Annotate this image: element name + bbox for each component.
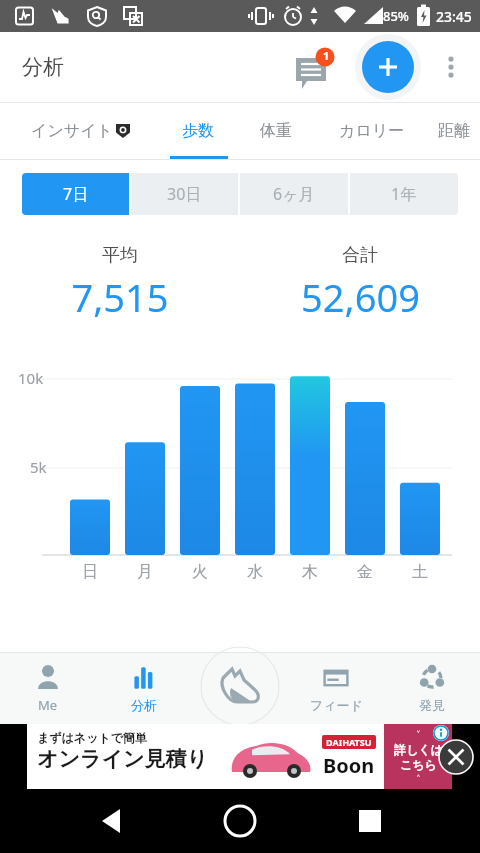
button[interactable]: Back bbox=[90, 799, 134, 843]
button[interactable]: Start workout bbox=[192, 652, 288, 724]
staticText: 木 bbox=[302, 562, 318, 582]
staticText: 分析 bbox=[22, 54, 64, 80]
button[interactable]: カロリー bbox=[316, 103, 428, 159]
button[interactable]: 1年 bbox=[350, 173, 458, 215]
staticText: 1年 bbox=[391, 183, 417, 205]
staticText: 30日 bbox=[167, 183, 202, 205]
staticText: ˄ bbox=[417, 772, 420, 786]
button[interactable]: Me bbox=[0, 652, 96, 724]
button[interactable]: Messages, 1 unread bbox=[288, 44, 334, 90]
button[interactable]: 30日 bbox=[131, 173, 238, 215]
staticText: 10k bbox=[18, 368, 44, 388]
button[interactable]: フィード bbox=[288, 652, 384, 724]
button[interactable]: ˅ bbox=[384, 724, 452, 789]
staticText: 7日 bbox=[63, 183, 89, 205]
button[interactable]: Close ad bbox=[438, 739, 474, 775]
button[interactable]: Home bbox=[218, 799, 262, 843]
button[interactable]: 平均 bbox=[0, 228, 240, 348]
staticText: こちら bbox=[400, 757, 437, 772]
button[interactable]: 発見 bbox=[384, 652, 480, 724]
staticText: 火 bbox=[192, 562, 208, 582]
staticText: Me bbox=[38, 696, 58, 714]
staticText: DAIHATSU bbox=[326, 736, 372, 748]
staticText: カロリー bbox=[339, 121, 405, 141]
button[interactable]: 体重 bbox=[236, 103, 316, 159]
button[interactable]: 7日 bbox=[22, 173, 129, 215]
staticText: 体重 bbox=[260, 121, 292, 141]
staticText: フィード bbox=[310, 697, 363, 713]
staticText: 6ヶ月 bbox=[273, 183, 315, 205]
button[interactable]: まずはネットで簡単 bbox=[27, 724, 384, 789]
button[interactable]: 距離 bbox=[428, 103, 480, 159]
staticText: 平均 bbox=[102, 244, 138, 267]
staticText: 7,515 bbox=[71, 271, 169, 323]
staticText: 85% bbox=[383, 7, 409, 25]
button[interactable]: Add bbox=[352, 32, 424, 102]
staticText: 距離 bbox=[438, 121, 470, 141]
staticText: 土 bbox=[412, 562, 428, 582]
staticText: オンライン見積り bbox=[37, 746, 208, 772]
staticText: 23:45 bbox=[436, 7, 472, 26]
button[interactable]: インサイト bbox=[0, 103, 160, 159]
staticText: 日 bbox=[82, 562, 98, 582]
button[interactable]: Ad info bbox=[433, 725, 449, 741]
staticText: まずはネットで簡単 bbox=[37, 730, 147, 745]
button[interactable]: 6ヶ月 bbox=[240, 173, 348, 215]
button[interactable]: 分析 bbox=[96, 652, 192, 724]
button[interactable]: Recent apps bbox=[348, 799, 392, 843]
staticText: 水 bbox=[247, 562, 263, 582]
staticText: Boon bbox=[323, 752, 375, 779]
button[interactable]: 合計 bbox=[240, 228, 480, 348]
button[interactable]: More options bbox=[428, 44, 474, 90]
staticText: ˅ bbox=[417, 728, 420, 742]
staticText: 1 bbox=[323, 48, 330, 63]
staticText: 発見 bbox=[419, 697, 445, 713]
staticText: 詳しくは bbox=[394, 742, 443, 757]
staticText: 歩数 bbox=[182, 121, 214, 141]
button[interactable]: 歩数 bbox=[160, 103, 236, 159]
staticText: 月 bbox=[137, 562, 153, 582]
staticText: 合計 bbox=[342, 244, 378, 267]
staticText: 金 bbox=[357, 562, 373, 582]
staticText: インサイト bbox=[31, 121, 113, 141]
staticText: 分析 bbox=[131, 697, 157, 713]
staticText: 52,609 bbox=[301, 271, 420, 323]
staticText: 5k bbox=[30, 457, 47, 477]
